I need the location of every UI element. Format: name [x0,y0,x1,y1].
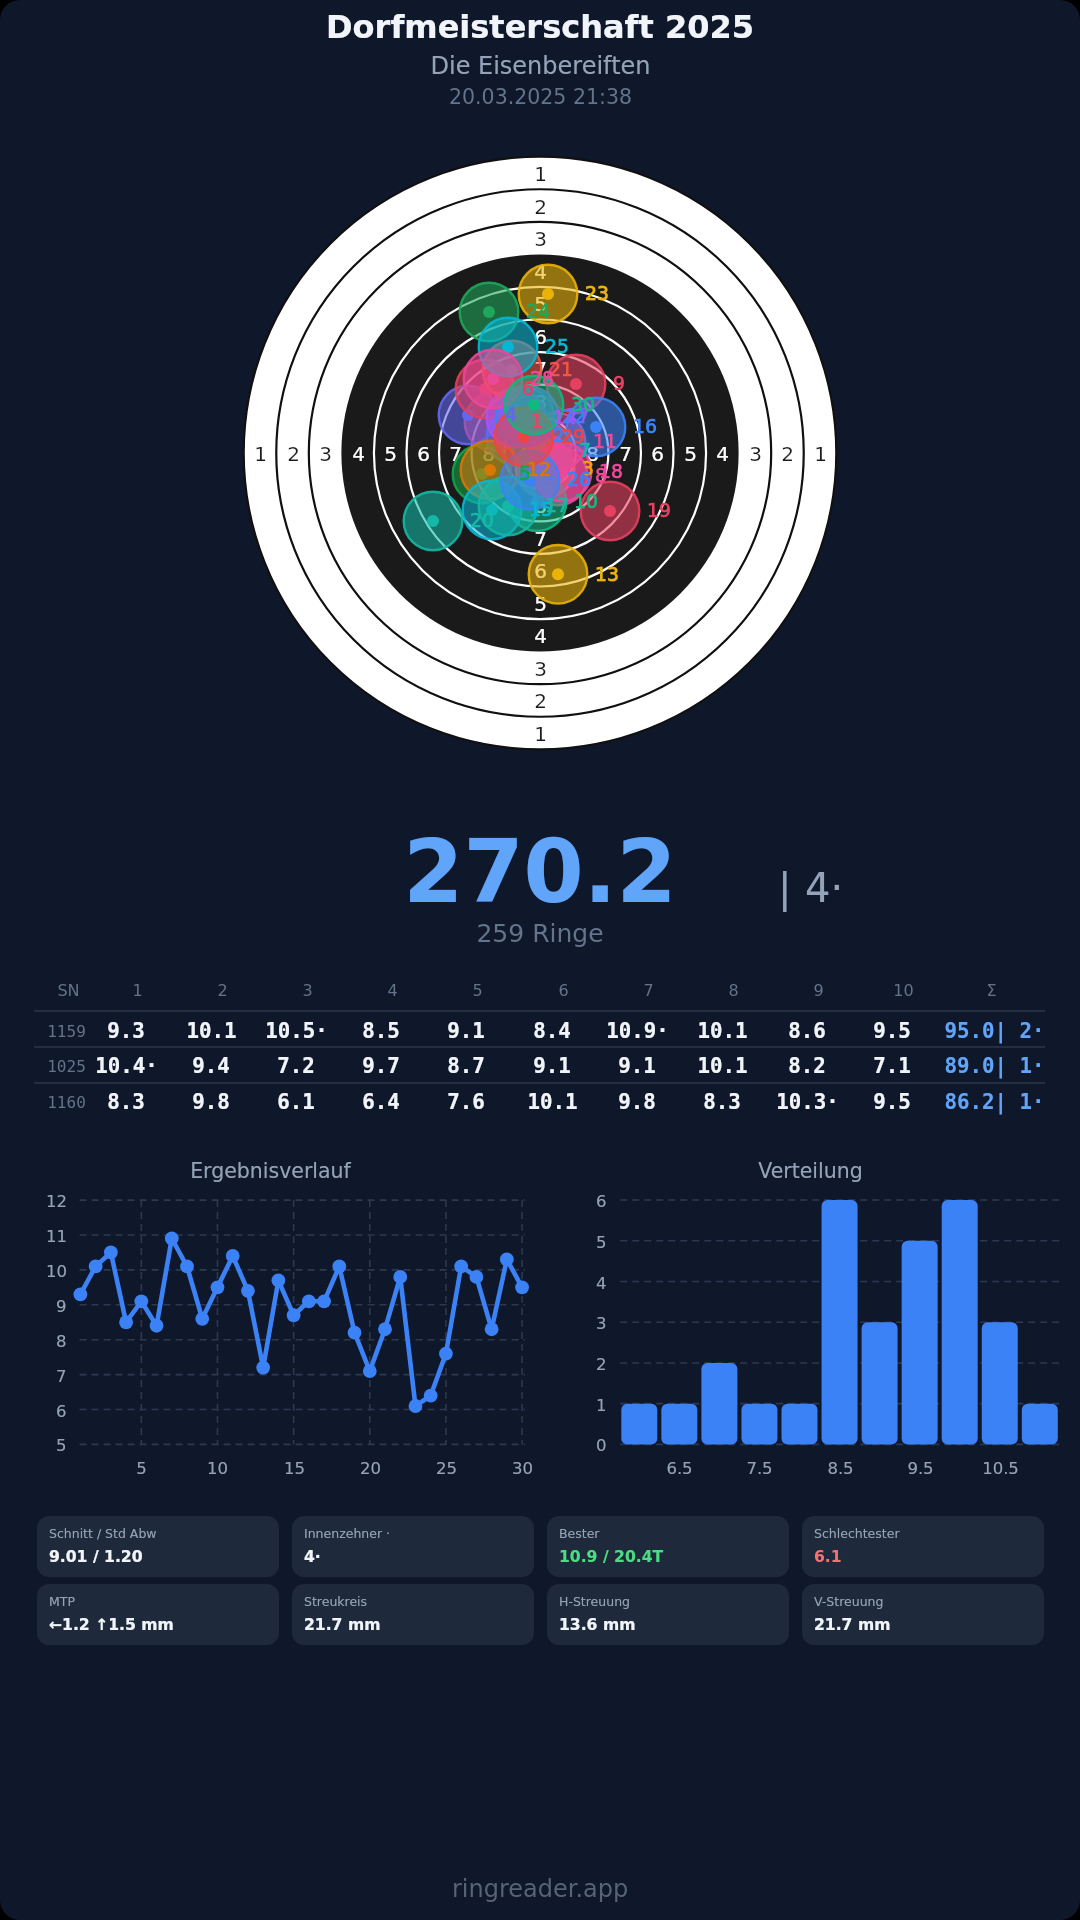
staticText: 14 [553,407,577,429]
staticText: 2 [596,1355,607,1374]
button[interactable] [34,1083,1045,1119]
staticText: 7 [56,1367,67,1386]
staticText: 13 [595,564,619,586]
button[interactable]: ringreader.app [440,1866,640,1912]
staticText: Dorfmeisterschaft 2025 [326,8,754,45]
staticText: 12 [527,459,551,481]
staticText: 7.2 [277,1054,315,1078]
staticText: 25 [545,336,569,358]
staticText: 4· [304,1548,321,1566]
staticText: 6.1 [814,1548,842,1566]
staticText: 10.1 [186,1019,237,1043]
staticText: 5 [519,463,531,485]
button[interactable] [802,1516,1044,1577]
staticText: 1 [534,162,547,185]
staticText: 4 [352,442,365,465]
staticText: ringreader.app [452,1875,629,1903]
button[interactable] [547,1516,789,1577]
staticText: 10.1 [527,1090,578,1114]
staticText: 5 [136,1459,147,1478]
staticText: 4 [387,981,398,1000]
staticText: 4 [716,442,729,465]
staticText: 18 [599,461,623,483]
staticText: 8 [534,390,547,413]
staticText: Die Eisenbereiften [430,52,651,80]
staticText: 3 [534,657,547,680]
staticText: 5 [472,981,483,1000]
staticText: 8.3 [107,1090,145,1114]
staticText: Schlechtester [814,1526,900,1541]
staticText: 8.6 [788,1019,826,1043]
staticText: 6.1 [277,1090,315,1114]
staticText: 6.5 [666,1459,693,1478]
staticText: 6 [558,981,569,1000]
button[interactable] [547,1584,789,1645]
staticText: 4 [534,624,547,647]
staticText: 29 [561,426,585,448]
button[interactable] [34,1011,1045,1047]
button[interactable] [37,1584,279,1645]
staticText: 20 [360,1459,381,1478]
button[interactable] [37,1516,279,1577]
staticText: 1 [814,442,827,465]
staticText: 10.9 / 20.4T [559,1548,664,1566]
staticText: 2 [534,689,547,712]
staticText: 1025 [47,1057,86,1076]
staticText: 9.1 [447,1019,485,1043]
staticText: 8 [595,465,607,487]
staticText: 6 [534,559,547,582]
staticText: 12 [46,1192,67,1211]
staticText: 259 Ringe [476,919,604,948]
staticText: 270.2 [403,822,677,923]
staticText: 7.5 [746,1459,773,1478]
staticText: 21 [549,359,573,381]
staticText: 3 [596,1314,607,1333]
staticText: 30 [512,1459,533,1478]
staticText: H-Streuung [559,1594,631,1609]
staticText: Innenzehner · [304,1526,391,1541]
button[interactable] [292,1516,534,1577]
staticText: 11 [46,1227,67,1246]
button[interactable] [802,1584,1044,1645]
button[interactable] [292,1584,534,1645]
button[interactable] [34,1047,1045,1083]
staticText: 8.3 [703,1090,741,1114]
staticText: 1 [596,1396,607,1415]
staticText: 24 [526,301,550,323]
staticText: 25 [436,1459,457,1478]
staticText: 7 [579,440,591,462]
staticText: ←1.2 ↑1.5 mm [49,1616,174,1634]
staticText: 10.4· [95,1054,158,1078]
staticText: 27 [566,405,590,427]
staticText: 23 [585,283,609,305]
staticText: 2 [781,442,794,465]
staticText: 5 [534,292,547,315]
staticText: 5 [596,1233,607,1252]
staticText: 4 [596,1274,607,1293]
staticText: 3 [302,981,313,1000]
staticText: 9.5 [873,1019,911,1043]
staticText: 7 [449,442,462,465]
staticText: 3 [319,442,332,465]
staticText: 13.6 mm [559,1616,636,1634]
staticText: 10 [893,981,914,1000]
staticText: Σ [986,981,997,1000]
staticText: 1 [534,722,547,745]
staticText: 17 [545,495,569,517]
staticText: 9 [813,981,824,1000]
staticText: 3 [534,227,547,250]
staticText: 11 [593,431,617,453]
staticText: Bester [559,1526,600,1541]
staticText: 5 [534,592,547,615]
staticText: 9.01 / 1.20 [49,1548,143,1566]
staticText: Verteilung [758,1159,863,1183]
staticText: 10.5 [982,1459,1019,1478]
staticText: 9.8 [618,1090,656,1114]
staticText: 4 [534,260,547,283]
staticText: SN [57,981,80,1000]
staticText: 6.4 [362,1090,400,1114]
staticText: 86.2| 1· [944,1090,1045,1114]
staticText: 8.5 [827,1459,854,1478]
staticText: 7 [534,357,547,380]
staticText: 3 [582,458,594,480]
